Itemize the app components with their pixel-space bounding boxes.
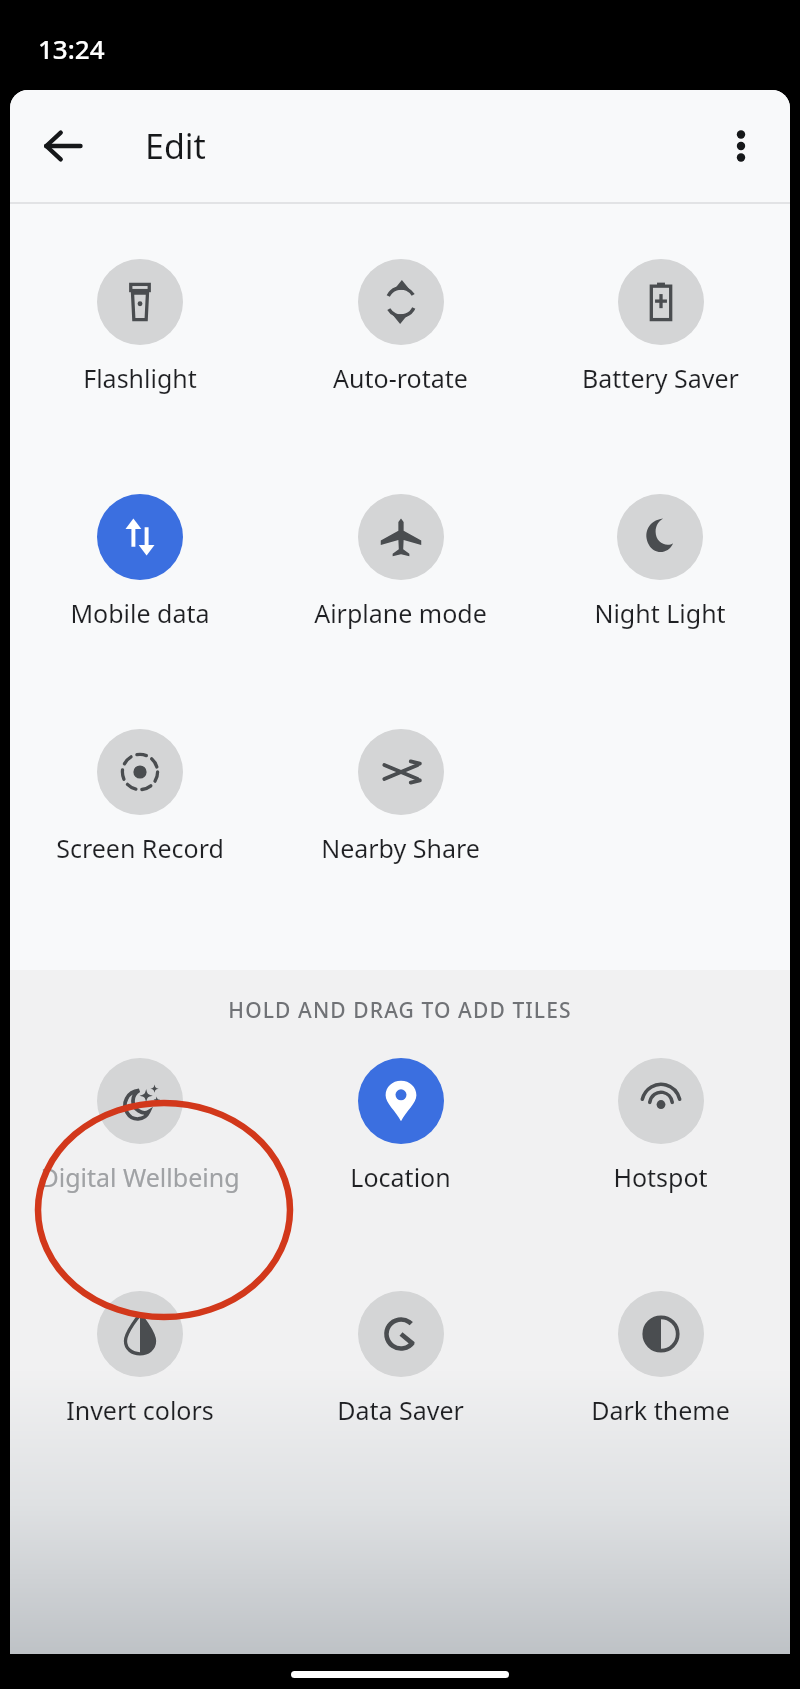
staticText: 13:24 <box>38 31 105 66</box>
staticText: Battery Saver <box>582 361 739 395</box>
button[interactable]: Invert colors <box>62 1291 218 1427</box>
staticText: Auto-rotate <box>333 361 468 395</box>
button[interactable]: Data Saver <box>333 1291 468 1427</box>
button[interactable]: Airplane mode <box>310 494 491 630</box>
staticText: Digital Wellbeing <box>40 1160 240 1194</box>
staticText: Flashlight <box>83 361 197 395</box>
staticText: Screen Record <box>56 831 224 865</box>
button[interactable]: Digital Wellbeing <box>36 1058 244 1194</box>
staticText: Nearby Share <box>321 831 480 865</box>
staticText: Airplane mode <box>314 596 487 630</box>
button[interactable]: Battery Saver <box>578 259 743 395</box>
button[interactable]: Mobile data <box>66 494 214 630</box>
staticText: Dark theme <box>591 1393 730 1427</box>
button[interactable]: Nearby Share <box>317 729 484 865</box>
staticText: Data Saver <box>337 1393 464 1427</box>
staticText: Hotspot <box>613 1160 708 1194</box>
staticText: HOLD AND DRAG TO ADD TILES <box>10 996 790 1025</box>
staticText: Location <box>350 1160 451 1194</box>
button[interactable]: Screen Record <box>52 729 228 865</box>
button[interactable]: Auto-rotate <box>329 259 472 395</box>
button[interactable]: Dark theme <box>587 1291 734 1427</box>
staticText: Night Light <box>594 596 726 630</box>
button[interactable]: Night Light <box>590 494 730 630</box>
button[interactable]: More options <box>708 113 774 179</box>
staticText: Mobile data <box>70 596 210 630</box>
button[interactable]: Hotspot <box>609 1058 712 1194</box>
button[interactable]: Location <box>346 1058 455 1194</box>
button[interactable]: Flashlight <box>79 259 201 395</box>
staticText: Edit <box>145 123 206 169</box>
staticText: Invert colors <box>66 1393 214 1427</box>
button[interactable]: Back <box>30 113 96 179</box>
